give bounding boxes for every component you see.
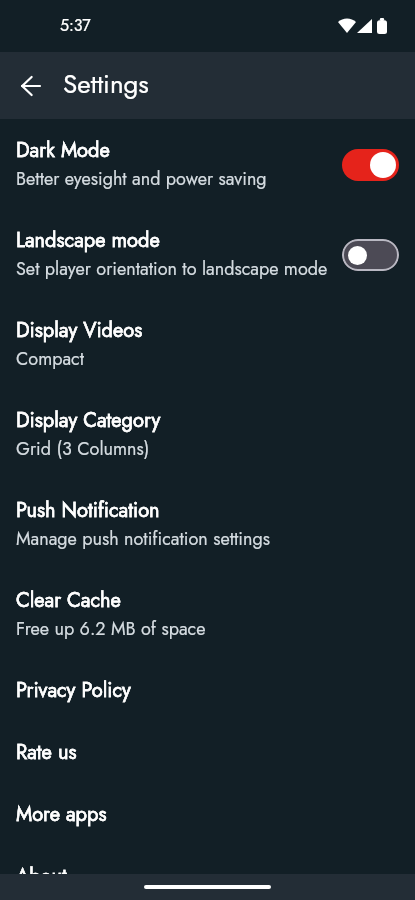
- staticText: Push Notification: [16, 496, 160, 525]
- staticText: Dark Mode: [16, 136, 110, 165]
- button[interactable]: Display Category: [0, 397, 415, 487]
- staticText: Clear Cache: [16, 586, 121, 615]
- staticText: Manage push notification settings: [16, 526, 270, 552]
- staticText: Display Category: [16, 406, 161, 435]
- staticText: More apps: [16, 800, 107, 829]
- button[interactable]: Landscape mode: [0, 217, 415, 307]
- staticText: Privacy Policy: [16, 676, 131, 705]
- staticText: Free up 6.2 MB of space: [16, 616, 206, 642]
- button[interactable]: More apps: [0, 791, 415, 853]
- staticText: Landscape mode: [16, 226, 160, 255]
- staticText: About: [16, 862, 67, 891]
- staticText: Set player orientation to landscape mode: [16, 256, 328, 282]
- staticText: Settings: [63, 65, 149, 103]
- staticText: Landscape mode: [16, 226, 160, 255]
- staticText: Display Videos: [16, 316, 143, 345]
- button[interactable]: About: [0, 853, 415, 900]
- staticText: Better eyesight and power saving: [16, 166, 267, 192]
- staticText: Push Notification: [16, 496, 160, 525]
- staticText: Grid (3 Columns): [16, 436, 150, 462]
- button[interactable]: Privacy Policy: [0, 667, 415, 729]
- staticText: Rate us: [16, 738, 77, 767]
- button[interactable]: Push Notification: [0, 487, 415, 577]
- staticText: More apps: [16, 800, 107, 829]
- staticText: About: [16, 862, 67, 891]
- button[interactable]: Display Videos: [0, 307, 415, 397]
- staticText: Privacy Policy: [16, 676, 131, 705]
- staticText: Display Videos: [16, 316, 143, 345]
- staticText: Dark Mode: [16, 136, 110, 165]
- button[interactable]: Landscape mode off: [342, 239, 399, 271]
- staticText: 5:37: [60, 14, 91, 37]
- button[interactable]: Clear Cache: [0, 577, 415, 667]
- button[interactable]: Dark Mode: [0, 127, 415, 217]
- staticText: Clear Cache: [16, 586, 121, 615]
- button[interactable]: Dark mode on: [342, 149, 399, 181]
- button[interactable]: Rate us: [0, 729, 415, 791]
- staticText: Display Category: [16, 406, 161, 435]
- staticText: Compact: [16, 346, 85, 372]
- button[interactable]: Back: [9, 65, 51, 107]
- staticText: Rate us: [16, 738, 77, 767]
